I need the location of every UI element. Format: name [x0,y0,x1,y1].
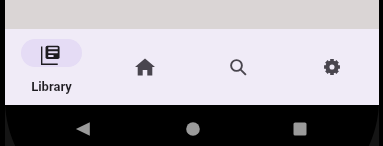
button[interactable]: Settings [285,29,379,105]
button[interactable]: Home [173,105,213,146]
button[interactable]: Home [98,29,191,105]
staticText: Library [31,79,72,94]
button[interactable]: Search [191,29,285,105]
button[interactable]: Back [63,105,103,146]
button[interactable]: Recents [280,105,320,146]
button[interactable]: Library [5,29,98,105]
